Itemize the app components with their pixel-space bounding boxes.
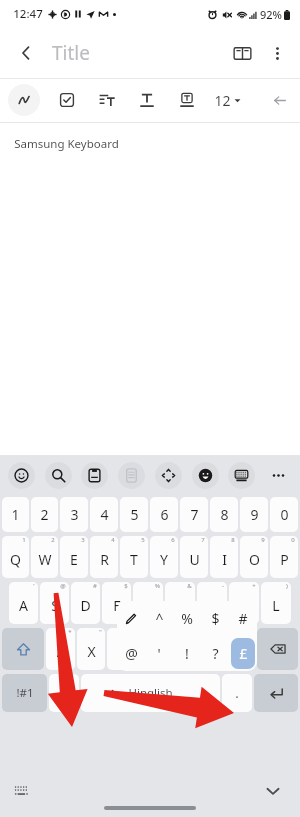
staticText: 7 [190, 505, 199, 524]
button[interactable]: 2 [31, 536, 58, 578]
button[interactable]: 8 [210, 497, 238, 532]
button[interactable]: Pen [8, 84, 40, 116]
button[interactable]: More [265, 462, 292, 489]
button[interactable]: Paragraph style [94, 87, 120, 113]
staticText: - [222, 582, 224, 590]
staticText: J [210, 596, 214, 615]
button[interactable]: " [77, 628, 105, 670]
button[interactable]: & [165, 582, 195, 624]
button[interactable]: @ [40, 582, 69, 624]
button[interactable]: Text format [134, 87, 160, 113]
staticText: M [235, 642, 248, 661]
button[interactable]: # [71, 582, 100, 624]
button[interactable]: ' [9, 582, 38, 624]
button[interactable]: 6 [150, 497, 178, 532]
staticText: 7 [201, 536, 205, 544]
staticText: 5 [130, 505, 139, 524]
button[interactable]: 9 [240, 536, 268, 578]
button[interactable]: - [197, 582, 227, 624]
staticText: " [99, 628, 102, 636]
button[interactable]: , [49, 674, 79, 712]
button[interactable]: 6 [150, 536, 178, 578]
button[interactable]: ! [173, 636, 201, 671]
staticText: 0 [280, 505, 289, 524]
button[interactable]: Back [8, 35, 44, 71]
staticText: 5 [141, 536, 145, 544]
staticText: N [206, 642, 217, 661]
staticText: 6 [160, 505, 169, 524]
button[interactable]: Backspace [257, 628, 298, 670]
button[interactable]: 0 [270, 497, 298, 532]
button[interactable]: Samsung Keyboard [0, 123, 300, 455]
button[interactable]: ! [197, 628, 225, 670]
button[interactable]: ? [201, 636, 229, 671]
button[interactable]: Search [45, 462, 72, 489]
button[interactable]: 9 [240, 497, 268, 532]
button[interactable]: 1 [2, 536, 29, 578]
button[interactable]: * [46, 628, 75, 670]
button[interactable]: Clipboard [81, 462, 108, 489]
button[interactable]: : [137, 628, 165, 670]
button[interactable]: 1 [2, 497, 29, 532]
button[interactable]: 12 [212, 91, 243, 110]
button[interactable]: Move keyboard [155, 462, 182, 489]
button[interactable]: # [229, 601, 257, 636]
button[interactable]: @ [117, 636, 145, 671]
staticText: S [51, 596, 59, 615]
button[interactable]: $ [102, 582, 131, 624]
button[interactable]: 8 [210, 536, 238, 578]
button[interactable]: 3 [60, 536, 88, 578]
button[interactable]: £ [231, 638, 255, 669]
button[interactable]: + [229, 582, 259, 624]
button[interactable]: Hinglish [81, 674, 220, 712]
button[interactable]: Enter [254, 674, 298, 712]
button[interactable]: Hide keyboard [258, 776, 288, 806]
button[interactable]: . [222, 674, 252, 712]
staticText: I [222, 550, 227, 569]
button[interactable]: Emoji [8, 462, 35, 489]
button[interactable]: Collapse toolbar [266, 87, 292, 113]
button[interactable]: Keyboard modes [228, 462, 255, 489]
staticText: P [280, 550, 289, 569]
button[interactable]: % [133, 582, 163, 624]
button[interactable]: ' [145, 636, 173, 671]
button[interactable]: !#1 [2, 674, 47, 712]
button[interactable]: ' [107, 628, 135, 670]
button[interactable]: 4 [90, 497, 118, 532]
button[interactable]: $ [201, 601, 229, 636]
staticText: R [100, 550, 109, 569]
button[interactable]: Checklist [54, 87, 80, 113]
staticText: Y [160, 550, 168, 569]
button[interactable]: 5 [120, 536, 148, 578]
button[interactable]: Stickers [192, 462, 219, 489]
button[interactable]: 7 [180, 497, 208, 532]
button[interactable]: Shift [2, 628, 44, 670]
button[interactable]: ^ [145, 601, 173, 636]
staticText: % [155, 582, 160, 590]
button[interactable]: Keyboard layout [6, 776, 36, 806]
button[interactable]: More options [260, 36, 294, 70]
button[interactable]: Translate [118, 462, 145, 489]
button[interactable]: Text box [174, 87, 200, 113]
staticText: 4 [100, 505, 109, 524]
button[interactable]: 5 [120, 497, 148, 532]
button[interactable]: ; [167, 628, 195, 670]
button[interactable]: 3 [60, 497, 88, 532]
button[interactable]: ) [261, 582, 291, 624]
staticText: + [252, 582, 256, 590]
button[interactable]: % [173, 601, 201, 636]
staticText: !#1 [16, 685, 34, 701]
staticText: 9 [250, 505, 259, 524]
button[interactable]: ? [227, 628, 255, 670]
button[interactable]: Reading view [224, 35, 260, 71]
button[interactable]: 2 [31, 497, 58, 532]
button[interactable]: 4 [90, 536, 118, 578]
button[interactable]: 7 [180, 536, 208, 578]
button[interactable]: Handwriting [117, 601, 145, 636]
button[interactable]: 0 [270, 536, 298, 578]
staticText: Title [52, 40, 90, 66]
